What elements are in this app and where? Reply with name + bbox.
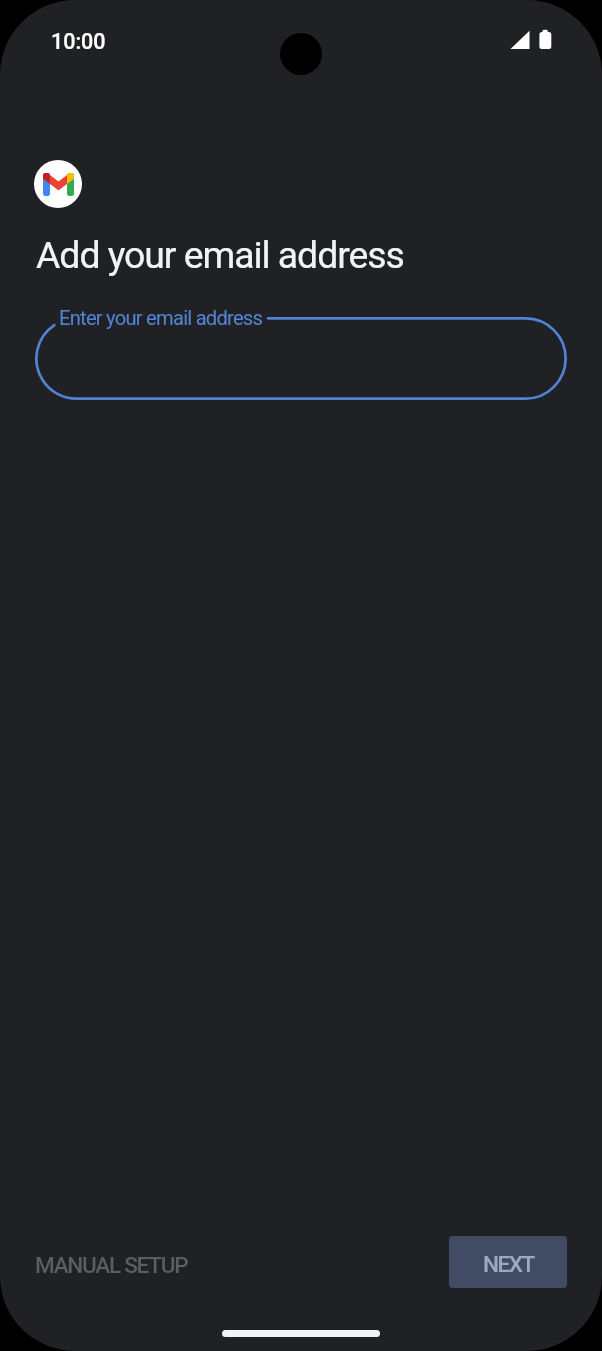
staticText: 10:00 [51, 29, 106, 54]
staticText: Add your email address [36, 233, 404, 277]
staticText: NEXT [483, 1251, 534, 1277]
button[interactable]: MANUAL SETUP [23, 1243, 200, 1287]
button[interactable]: Enter your email address [35, 317, 567, 400]
staticText: Enter your email address [59, 306, 263, 330]
staticText: MANUAL SETUP [35, 1252, 188, 1278]
button[interactable]: NEXT [449, 1236, 567, 1288]
other: Gmail [34, 160, 82, 208]
